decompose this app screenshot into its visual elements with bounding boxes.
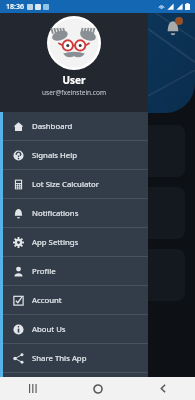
staticText: App Settings: [32, 237, 79, 248]
button[interactable]: App Settings: [0, 228, 148, 256]
button[interactable]: Account: [0, 286, 148, 314]
staticText: Account: [32, 295, 62, 306]
button[interactable]: Home: [86, 377, 110, 400]
button[interactable]: Profile: [0, 257, 148, 285]
button[interactable]: Signals Help: [0, 141, 148, 169]
button[interactable]: App Settings: [10, 187, 185, 239]
staticText: user@fxeinstein.com: [42, 88, 106, 97]
button[interactable]: Back: [151, 377, 175, 400]
staticText: Profile: [32, 266, 56, 277]
staticText: About Us: [32, 324, 66, 335]
button[interactable]: Notifications: [0, 199, 148, 227]
button[interactable]: About Us: [0, 315, 148, 343]
staticText: App Settings: [46, 203, 75, 223]
button[interactable]: Share This App: [0, 344, 148, 372]
button[interactable]: Dashboard: [0, 112, 148, 140]
button[interactable]: Notifications: [165, 20, 181, 36]
button[interactable]: Long Term Signals: [10, 125, 185, 177]
button[interactable]: Lot Size Calculator: [0, 170, 148, 198]
button[interactable]: Recent apps: [21, 377, 45, 400]
staticText: Long Term Signals: [46, 141, 84, 161]
staticText: (Demo Route ): [20, 270, 71, 280]
staticText: Share This App: [32, 353, 87, 364]
staticText: Signals Help: [32, 150, 78, 161]
staticText: Lot Size Calculator: [32, 179, 100, 190]
staticText: Dashboard: [32, 121, 73, 132]
staticText: Notifications: [32, 208, 79, 219]
staticText: 18:36: [6, 2, 24, 12]
button[interactable]: (Demo Route ): [10, 249, 185, 301]
staticText: User: [62, 73, 86, 87]
